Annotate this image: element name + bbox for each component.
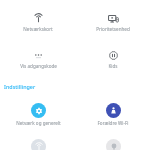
staticText: Netværk og generelt <box>16 120 61 126</box>
staticText: Kids <box>108 63 118 69</box>
button[interactable]: Wi-Fi <box>3 137 73 150</box>
button[interactable]: Prioritetsenhed <box>78 7 148 37</box>
staticText: Forældre Wi-Fi <box>97 120 129 126</box>
staticText: Vis adgangskode <box>20 63 57 69</box>
button[interactable]: Netværkskort <box>3 7 73 37</box>
button[interactable]: Vis adgangskode <box>3 44 73 74</box>
staticText: Indstillinger <box>4 83 36 90</box>
button[interactable]: Lys <box>78 137 148 150</box>
button[interactable]: Kids <box>78 44 148 74</box>
button[interactable]: Netværk og generelt <box>3 101 73 123</box>
staticText: Netværkskort <box>23 26 53 32</box>
button[interactable]: Forældre Wi-Fi <box>78 101 148 123</box>
staticText: Prioritetsenhed <box>96 26 130 32</box>
